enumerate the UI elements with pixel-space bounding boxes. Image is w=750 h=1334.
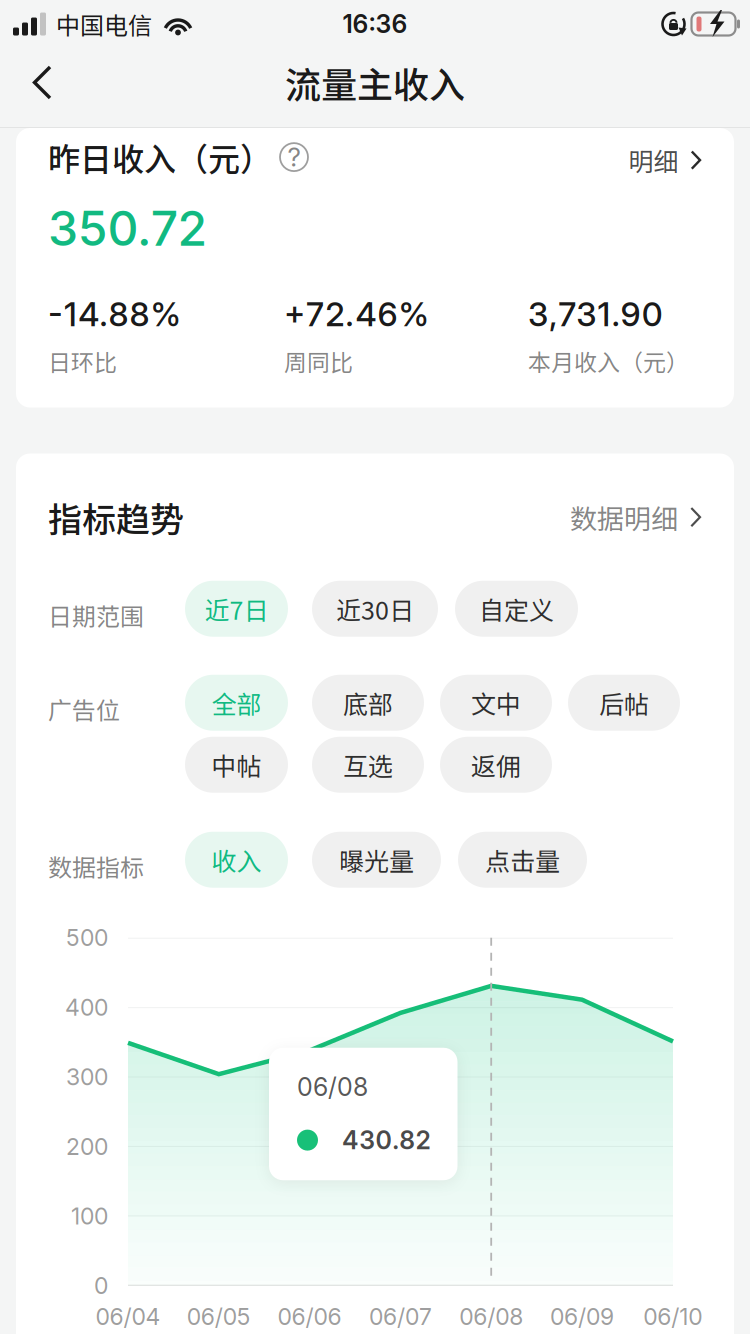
staticText: 3,731.90 bbox=[528, 294, 663, 334]
staticText: 自定义 bbox=[479, 591, 554, 627]
staticText: 全部 bbox=[211, 685, 261, 721]
staticText: 100 bbox=[71, 1202, 108, 1230]
button[interactable]: 返佣 bbox=[440, 737, 552, 793]
button[interactable]: 全部 bbox=[185, 675, 288, 731]
button[interactable]: Back bbox=[20, 48, 64, 127]
button[interactable]: 自定义 bbox=[455, 581, 578, 637]
staticText: 350.72 bbox=[48, 199, 207, 257]
button[interactable]: 收入 bbox=[185, 832, 288, 888]
button[interactable]: 近30日 bbox=[312, 581, 438, 637]
staticText: 互选 bbox=[343, 747, 393, 783]
staticText: 中帖 bbox=[211, 747, 261, 783]
staticText: 数据指标 bbox=[48, 849, 144, 883]
staticText: 06/06 bbox=[278, 1303, 342, 1331]
button[interactable]: 底部 bbox=[312, 675, 424, 731]
staticText: 流量主收入 bbox=[285, 56, 465, 108]
staticText: 0 bbox=[94, 1272, 108, 1300]
staticText: 数据明细 bbox=[570, 498, 678, 537]
button[interactable]: 明细 bbox=[628, 133, 702, 181]
staticText: 周同比 bbox=[284, 344, 353, 377]
staticText: 06/08 bbox=[297, 1072, 368, 1102]
button[interactable]: 曝光量 bbox=[312, 832, 441, 888]
staticText: 中国电信 bbox=[56, 7, 152, 41]
staticText: ? bbox=[287, 141, 300, 173]
staticText: 06/08 bbox=[459, 1303, 523, 1331]
staticText: 收入 bbox=[211, 842, 261, 878]
staticText: 06/10 bbox=[643, 1303, 702, 1331]
button[interactable]: 中帖 bbox=[185, 737, 288, 793]
staticText: 400 bbox=[65, 993, 108, 1021]
staticText: 文中 bbox=[471, 685, 521, 721]
staticText: 500 bbox=[66, 924, 108, 952]
staticText: 点击量 bbox=[485, 842, 560, 878]
staticText: 06/07 bbox=[369, 1303, 432, 1331]
staticText: 日环比 bbox=[48, 344, 117, 377]
staticText: 曝光量 bbox=[339, 842, 414, 878]
staticText: 昨日收入（元） bbox=[48, 134, 272, 180]
staticText: 返佣 bbox=[471, 747, 521, 783]
staticText: 近7日 bbox=[204, 591, 268, 627]
staticText: 06/09 bbox=[550, 1303, 614, 1331]
staticText: 广告位 bbox=[48, 692, 120, 726]
staticText: 近30日 bbox=[336, 591, 414, 627]
button[interactable]: 后帖 bbox=[568, 675, 680, 731]
staticText: 06/04 bbox=[95, 1303, 160, 1331]
button[interactable]: 互选 bbox=[312, 737, 424, 793]
staticText: +72.46% bbox=[284, 294, 429, 334]
staticText: 明细 bbox=[628, 142, 678, 178]
staticText: 200 bbox=[66, 1133, 108, 1160]
staticText: 16:36 bbox=[342, 9, 407, 39]
staticText: 指标趋势 bbox=[48, 492, 184, 542]
staticText: 后帖 bbox=[599, 685, 649, 721]
staticText: 本月收入（元） bbox=[528, 344, 689, 377]
button[interactable]: 数据明细 bbox=[570, 498, 702, 537]
staticText: 底部 bbox=[343, 685, 393, 721]
button[interactable]: 近7日 bbox=[185, 581, 288, 637]
staticText: 日期范围 bbox=[48, 598, 144, 632]
button[interactable]: 点击量 bbox=[458, 832, 587, 888]
staticText: 300 bbox=[66, 1063, 108, 1091]
staticText: 430.82 bbox=[342, 1125, 430, 1155]
staticText: -14.88% bbox=[48, 294, 181, 334]
staticText: 06/05 bbox=[187, 1303, 251, 1331]
button[interactable]: 文中 bbox=[440, 675, 552, 731]
